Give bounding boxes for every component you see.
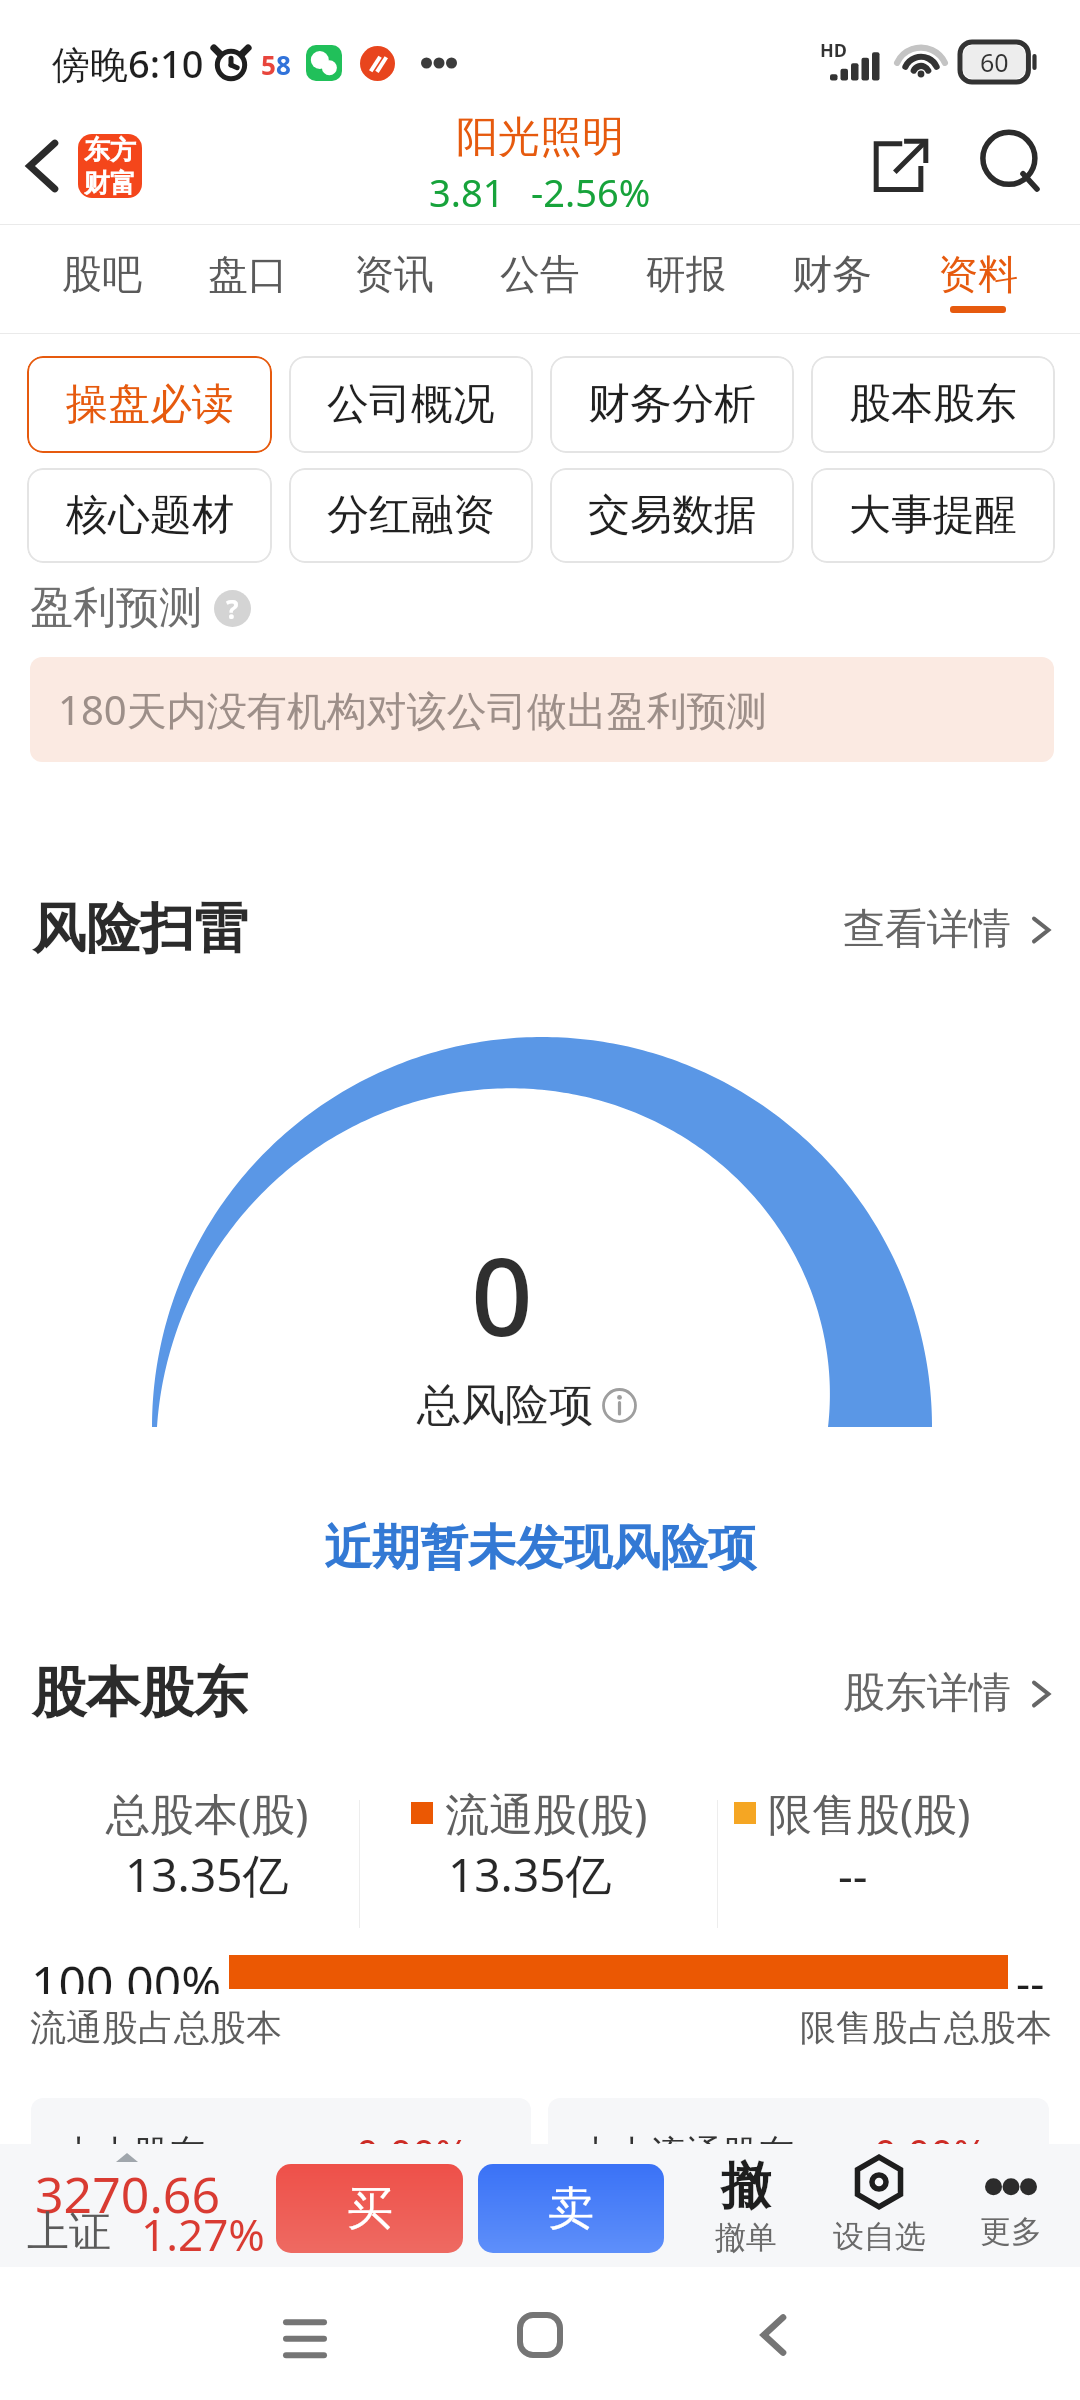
button[interactable]: 财务 — [759, 225, 905, 334]
staticText: 操盘必读 — [66, 378, 234, 431]
staticText: ? — [226, 591, 239, 626]
button[interactable]: 3270.66 — [20, 2152, 268, 2260]
staticText: 盈利预测 — [30, 581, 202, 635]
button[interactable]: 卖 — [478, 2164, 664, 2253]
staticText: 资讯 — [354, 249, 434, 299]
staticText: -2.56% — [531, 166, 651, 218]
staticText: 十大股东 — [61, 2131, 205, 2176]
staticText: 5 — [261, 47, 276, 79]
button[interactable]: 买 — [276, 2164, 463, 2253]
staticText: 交易数据 — [588, 489, 756, 542]
staticText: 公司概况 — [327, 378, 495, 431]
staticText: 限售股(股) — [768, 1783, 971, 1843]
button[interactable]: 资讯 — [321, 225, 467, 334]
staticText: 13.35亿 — [448, 1843, 612, 1906]
button[interactable]: 十大股东 — [31, 2098, 531, 2268]
button[interactable]: 财务分析 — [550, 356, 794, 453]
staticText: 股吧 — [62, 249, 142, 299]
button[interactable]: 资料 — [905, 225, 1051, 334]
staticText: HD — [820, 38, 847, 63]
staticText: 1.27% — [141, 2204, 265, 2264]
staticText: 撤 — [721, 2155, 771, 2218]
staticText: 0.00% — [356, 2126, 469, 2180]
staticText: 0 — [471, 1221, 533, 1368]
button[interactable]: 更多 — [951, 2144, 1071, 2267]
button[interactable]: 股本股东 — [811, 356, 1055, 453]
button[interactable]: 股东详情 — [843, 1667, 1055, 1720]
staticText: 3.81 — [429, 166, 505, 218]
button[interactable]: Home — [480, 2267, 600, 2400]
staticText: 更多 — [980, 2212, 1042, 2251]
staticText: 股东详情 — [843, 1667, 1011, 1720]
staticText: 研报 — [646, 249, 726, 299]
staticText: -- — [1016, 1952, 1045, 1996]
staticText: 180天内没有机构对该公司做出盈利预测 — [58, 682, 767, 737]
staticText: 总风险项 — [417, 1378, 593, 1433]
button[interactable]: 十大流通股东 — [548, 2098, 1049, 2268]
staticText: 查看详情 — [843, 903, 1011, 956]
button[interactable]: 操盘必读 — [27, 356, 272, 453]
staticText: 股本股东 — [849, 378, 1017, 431]
button[interactable]: 查看详情 — [843, 903, 1055, 956]
staticText: 卖 — [548, 2180, 594, 2238]
staticText: 十大流通股东 — [578, 2131, 794, 2176]
button[interactable]: 核心题材 — [27, 468, 272, 563]
button[interactable]: Search — [968, 120, 1060, 212]
button[interactable]: Share — [855, 120, 947, 212]
button[interactable]: Back — [713, 2267, 833, 2400]
button[interactable]: 公司概况 — [289, 356, 533, 453]
staticText: 13.35亿 — [125, 1843, 289, 1906]
staticText: 大事提醒 — [849, 489, 1017, 542]
staticText: 限售股占总股本 — [800, 2005, 1052, 2050]
staticText: 60 — [980, 45, 1009, 79]
staticText: 财务分析 — [588, 378, 756, 431]
staticText: 上证 — [27, 2206, 111, 2259]
staticText: 8 — [276, 47, 291, 79]
button[interactable]: 大事提醒 — [811, 468, 1055, 563]
staticText: 买 — [347, 2180, 393, 2238]
staticText: 总股本(股) — [106, 1783, 309, 1843]
staticText: 公告 — [500, 249, 580, 299]
button[interactable]: 撤 — [686, 2144, 806, 2267]
button[interactable]: East Money — [78, 134, 142, 198]
staticText: 阳光照明 — [456, 111, 624, 164]
button[interactable]: 公告 — [467, 225, 613, 334]
staticText: 股本股东 — [32, 1659, 248, 1727]
staticText: 风险扫雷 — [32, 895, 248, 963]
button[interactable]: 设自选 — [819, 2144, 939, 2267]
button[interactable]: 盘口 — [175, 225, 321, 334]
button[interactable]: Recents — [245, 2267, 365, 2400]
staticText: -- — [838, 1843, 868, 1906]
staticText: 分红融资 — [327, 489, 495, 542]
staticText: 3270.66 — [35, 2160, 220, 2228]
button[interactable]: 股吧 — [29, 225, 175, 334]
button[interactable]: 交易数据 — [550, 468, 794, 563]
staticText: 东方 — [84, 134, 136, 167]
staticText: 资料 — [938, 249, 1018, 299]
staticText: 傍晚6:10 — [52, 37, 204, 89]
staticText: 盘口 — [208, 249, 288, 299]
staticText: 核心题材 — [66, 489, 234, 542]
staticText: 财务 — [792, 249, 872, 299]
button[interactable]: 研报 — [613, 225, 759, 334]
staticText: 近期暂未发现风险项 — [324, 1518, 756, 1578]
staticText: 设自选 — [833, 2217, 926, 2256]
button[interactable]: Back — [6, 130, 78, 202]
staticText: 撤单 — [715, 2218, 777, 2257]
staticText: 流通股(股) — [445, 1783, 648, 1843]
button[interactable]: 分红融资 — [289, 468, 533, 563]
staticText: 财富 — [84, 167, 136, 198]
button[interactable]: Help — [214, 590, 251, 627]
staticText: 100.00% — [31, 1950, 222, 1994]
staticText: 0.00% — [874, 2126, 987, 2180]
staticText: 流通股占总股本 — [30, 2005, 282, 2050]
